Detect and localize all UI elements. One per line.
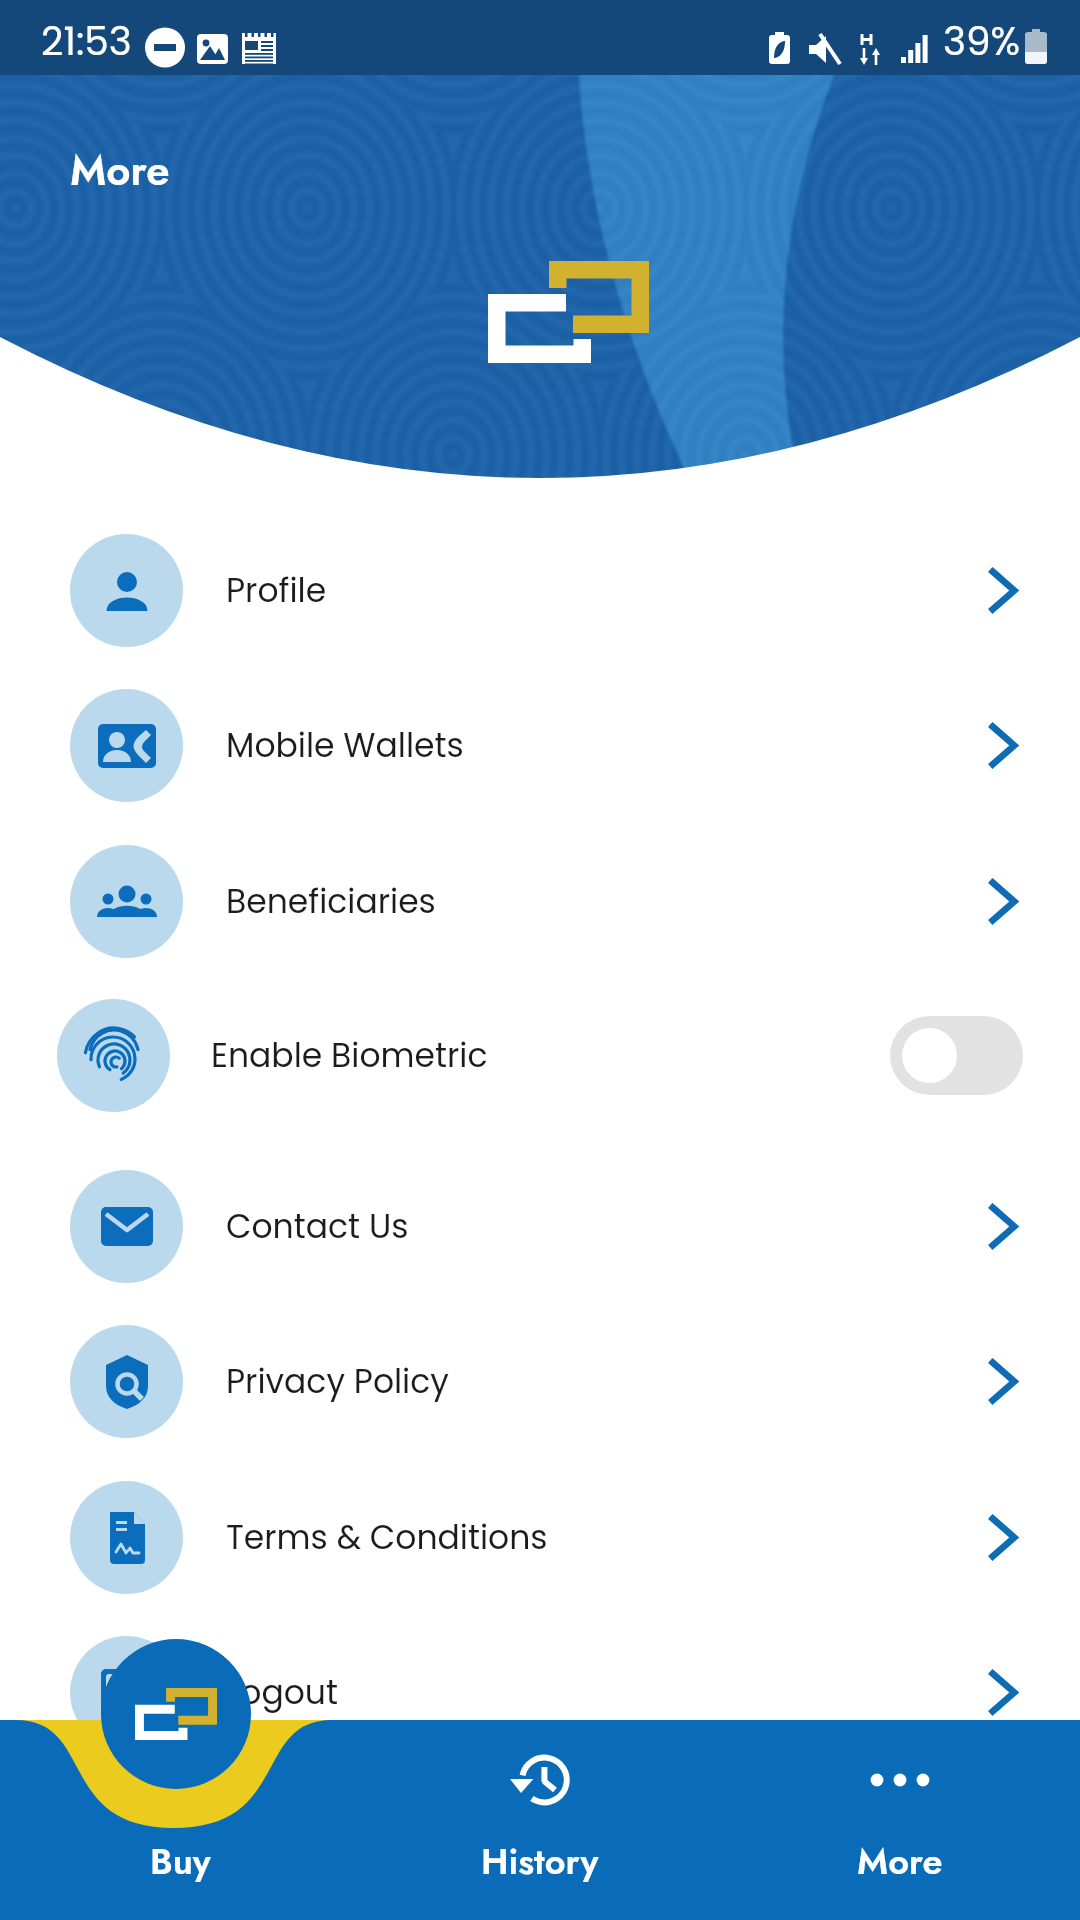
staticText: Contact Us — [226, 1203, 409, 1249]
button[interactable]: Logout — [0, 1622, 1080, 1762]
staticText: More — [70, 140, 170, 201]
staticText: Beneficiaries — [226, 878, 436, 924]
staticText: Enable Biometric — [211, 1032, 488, 1078]
staticText: Terms & Conditions — [226, 1514, 548, 1560]
button[interactable]: Enable Biometric toggle — [890, 1016, 1023, 1095]
staticText: Mobile Wallets — [226, 722, 464, 768]
staticText: 21:53 — [41, 14, 132, 69]
button[interactable]: Terms & Conditions — [0, 1467, 1080, 1607]
staticText: 39% — [943, 14, 1021, 69]
staticText: More — [857, 1835, 943, 1887]
button[interactable]: Profile — [0, 520, 1080, 660]
button[interactable]: Buy — [0, 1720, 360, 1920]
button[interactable]: History — [360, 1720, 720, 1920]
staticText: Profile — [226, 567, 327, 613]
button[interactable]: Mobile Wallets — [0, 675, 1080, 815]
button[interactable]: Privacy Policy — [0, 1311, 1080, 1451]
button[interactable]: More — [720, 1720, 1080, 1920]
staticText: Privacy Policy — [226, 1358, 449, 1404]
button[interactable]: Buy — [101, 1639, 251, 1789]
staticText: History — [481, 1835, 599, 1887]
staticText: Buy — [150, 1835, 211, 1887]
staticText: Logout — [226, 1669, 338, 1715]
button[interactable]: Beneficiaries — [0, 831, 1080, 971]
button[interactable]: Enable Biometric — [0, 985, 1080, 1125]
button[interactable]: Contact Us — [0, 1156, 1080, 1296]
